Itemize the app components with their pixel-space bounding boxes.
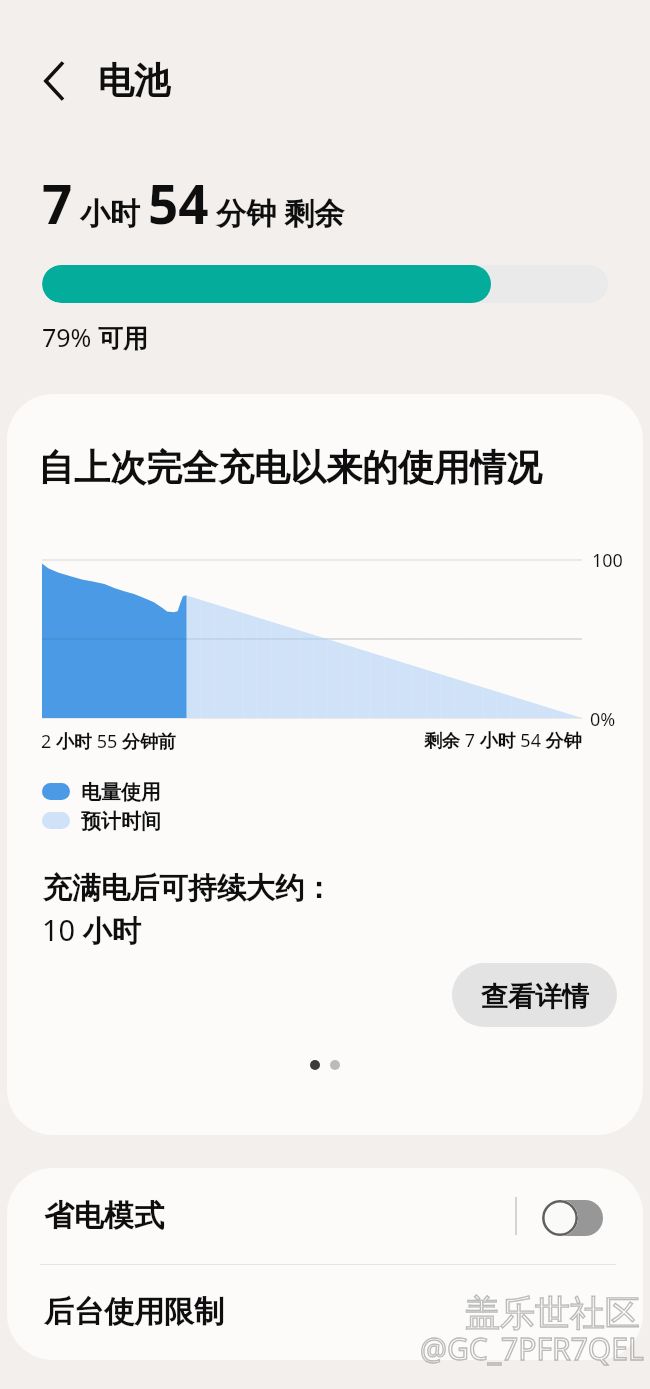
staticText: 查看详情 [481, 980, 589, 1014]
button[interactable]: Power saving mode toggle [542, 1200, 603, 1236]
staticText: 剩余 7 小时 54 分钟 [424, 728, 582, 753]
staticText: 后台使用限制 [44, 1293, 224, 1331]
staticText: 电池 [98, 58, 170, 103]
staticText: 充满电后可持续大约： [43, 870, 333, 907]
staticText: 7 小时 54 分钟 剩余 [42, 167, 345, 239]
staticText: 省电模式 [44, 1197, 164, 1235]
button[interactable]: 查看详情 [452, 963, 617, 1027]
staticText: 预计时间 [81, 809, 161, 834]
staticText: @GC_7PFR7QEL [420, 1328, 644, 1369]
button[interactable]: Back [24, 48, 88, 112]
button[interactable]: 省电模式 [7, 1168, 643, 1264]
staticText: 盖乐世社区 [465, 1291, 640, 1335]
staticText: 自上次完全充电以来的使用情况 [38, 445, 542, 490]
staticText: 2 小时 55 分钟前 [41, 729, 176, 754]
staticText: 0% [590, 707, 616, 732]
button[interactable]: 后台使用限制 [7, 1264, 643, 1360]
staticText: @GC_7PFR7QEL [420, 1328, 644, 1369]
staticText: 10 小时 [42, 910, 141, 950]
staticText: 79% 可用 [42, 320, 148, 354]
staticText: 电量使用 [81, 780, 161, 805]
staticText: 盖乐世社区 [465, 1291, 640, 1335]
staticText: 100 [592, 548, 623, 573]
